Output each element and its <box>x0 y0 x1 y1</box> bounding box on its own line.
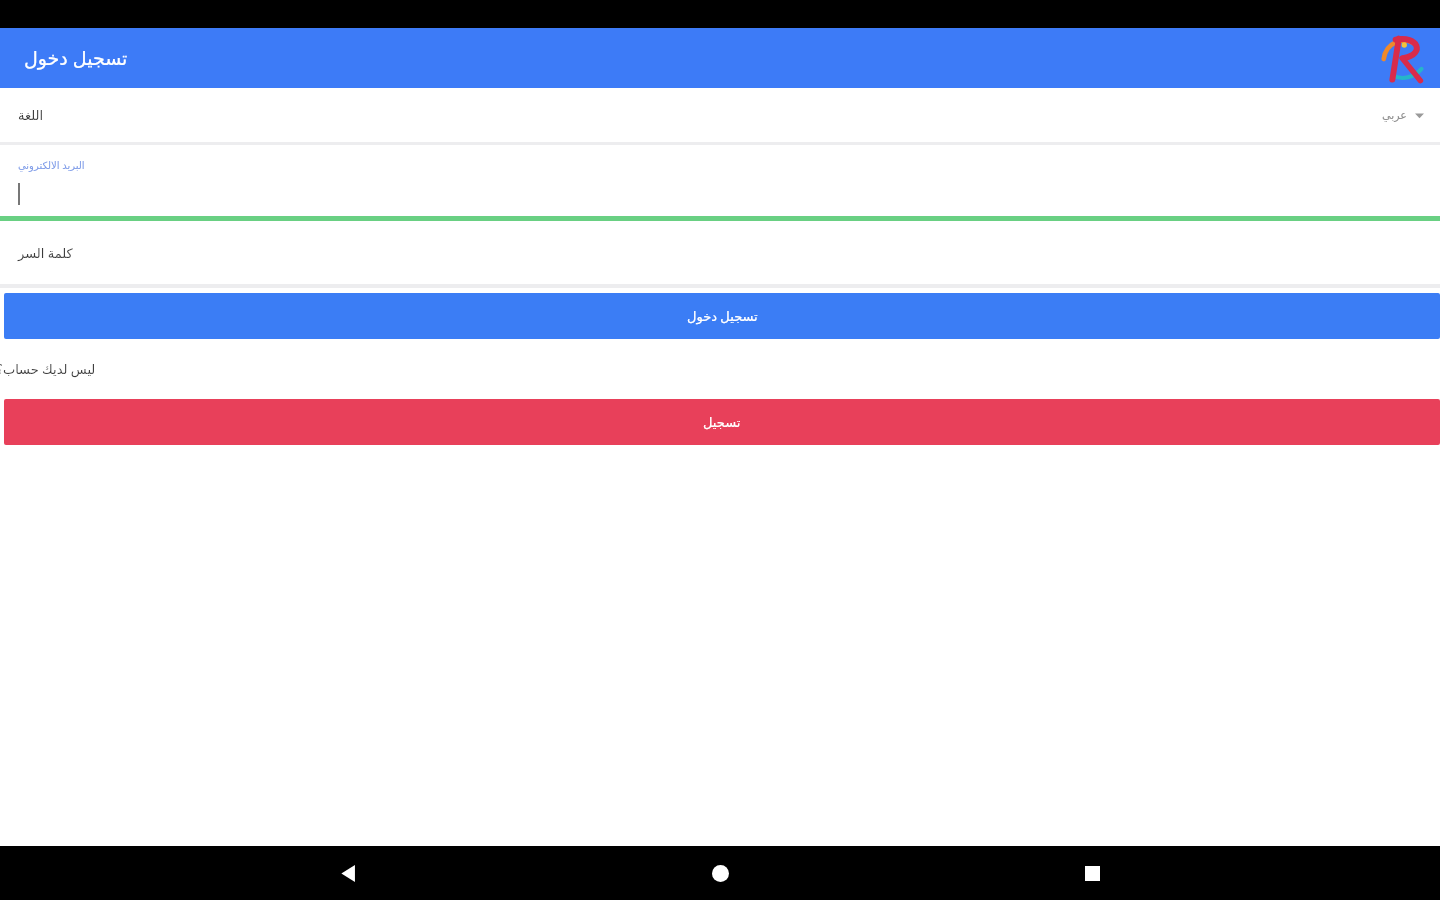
button[interactable]: Back <box>324 849 372 897</box>
staticText: البريد الالكتروني <box>18 158 85 172</box>
button[interactable]: البريد الالكتروني <box>0 145 1440 216</box>
staticText: تسجيل <box>703 415 741 430</box>
button[interactable]: تسجيل <box>4 399 1440 445</box>
button[interactable]: Recent apps <box>1068 849 1116 897</box>
staticText: عربي <box>1382 109 1407 122</box>
button[interactable]: App logo <box>1374 31 1428 85</box>
staticText: تسجيل دخول <box>24 45 128 71</box>
staticText: تسجيل دخول <box>687 307 758 325</box>
button[interactable]: تسجيل دخول <box>4 293 1440 339</box>
button[interactable]: تسجيل دخول <box>24 45 128 71</box>
staticText: كلمة السر <box>18 244 73 262</box>
staticText: اللغة <box>18 108 44 123</box>
staticText: ليس لديك حساب؟ <box>0 360 96 378</box>
button[interactable]: Home <box>696 849 744 897</box>
button[interactable]: اللغة <box>0 88 1440 142</box>
button[interactable]: كلمة السر <box>0 221 1440 284</box>
